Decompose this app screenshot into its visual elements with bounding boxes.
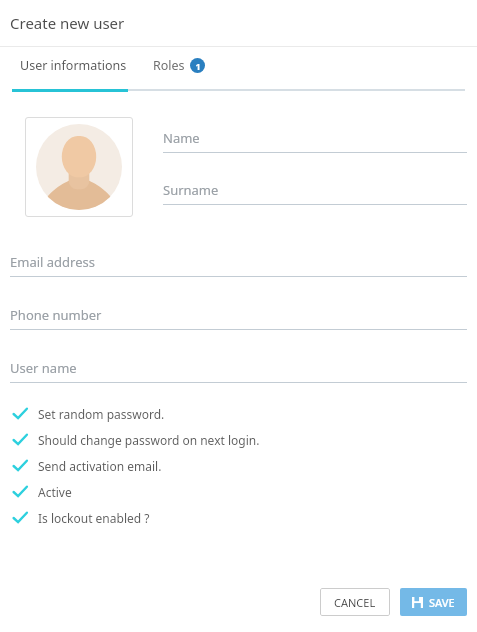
- staticText: Roles: [153, 57, 185, 74]
- staticText: Name: [163, 129, 200, 147]
- button[interactable]: CANCEL: [320, 588, 390, 616]
- staticText: User informations: [20, 57, 127, 74]
- button[interactable]: Set random password.: [8, 401, 477, 427]
- staticText: Surname: [163, 181, 219, 199]
- button[interactable]: Email address: [10, 253, 467, 277]
- staticText: Should change password on next login.: [38, 432, 260, 448]
- button[interactable]: Phone number: [10, 306, 467, 330]
- staticText: Send activation email.: [38, 458, 162, 474]
- staticText: 1: [195, 60, 201, 72]
- button[interactable]: Active: [8, 479, 477, 505]
- button[interactable]: Send activation email.: [8, 453, 477, 479]
- button[interactable]: User informations: [12, 47, 135, 84]
- staticText: Active: [38, 484, 72, 500]
- staticText: Create new user: [10, 13, 125, 33]
- button[interactable]: Name: [163, 129, 467, 153]
- staticText: Email address: [10, 253, 95, 271]
- button[interactable]: Roles: [147, 47, 211, 84]
- staticText: Phone number: [10, 306, 102, 324]
- staticText: SAVE: [429, 595, 455, 610]
- staticText: User name: [10, 359, 77, 377]
- button[interactable]: Surname: [163, 181, 467, 205]
- staticText: Is lockout enabled ?: [38, 510, 150, 526]
- staticText: Set random password.: [38, 406, 165, 422]
- button[interactable]: User name: [10, 359, 467, 383]
- button[interactable]: Profile picture: [25, 117, 133, 217]
- button[interactable]: SAVE: [400, 588, 467, 616]
- button[interactable]: Should change password on next login.: [8, 427, 477, 453]
- staticText: CANCEL: [334, 595, 376, 610]
- button[interactable]: Is lockout enabled ?: [8, 505, 477, 531]
